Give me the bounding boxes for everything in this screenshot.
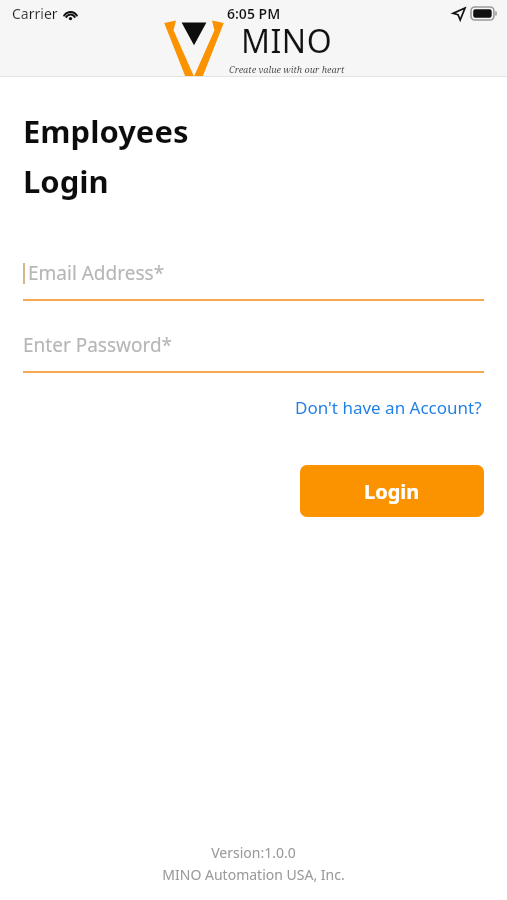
staticText: MINO	[241, 19, 333, 63]
button[interactable]: Login	[300, 465, 484, 517]
staticText: Version:1.0.0	[211, 843, 296, 862]
staticText: Employees	[23, 110, 189, 152]
staticText: MINO Automation USA, Inc.	[162, 865, 345, 884]
staticText: Create value with our heart	[229, 63, 345, 75]
staticText: Don't have an Account?	[295, 396, 482, 419]
staticText: Enter Password*	[23, 332, 173, 358]
staticText: Login	[364, 478, 420, 505]
staticText: Login	[23, 160, 109, 202]
button[interactable]: Email Address*	[23, 260, 484, 301]
button[interactable]: Don't have an Account?	[293, 392, 484, 423]
staticText: 6:05 PM	[227, 4, 281, 23]
staticText: Email Address*	[28, 260, 165, 286]
button[interactable]: Enter Password*	[23, 332, 484, 373]
staticText: Carrier	[12, 4, 58, 23]
